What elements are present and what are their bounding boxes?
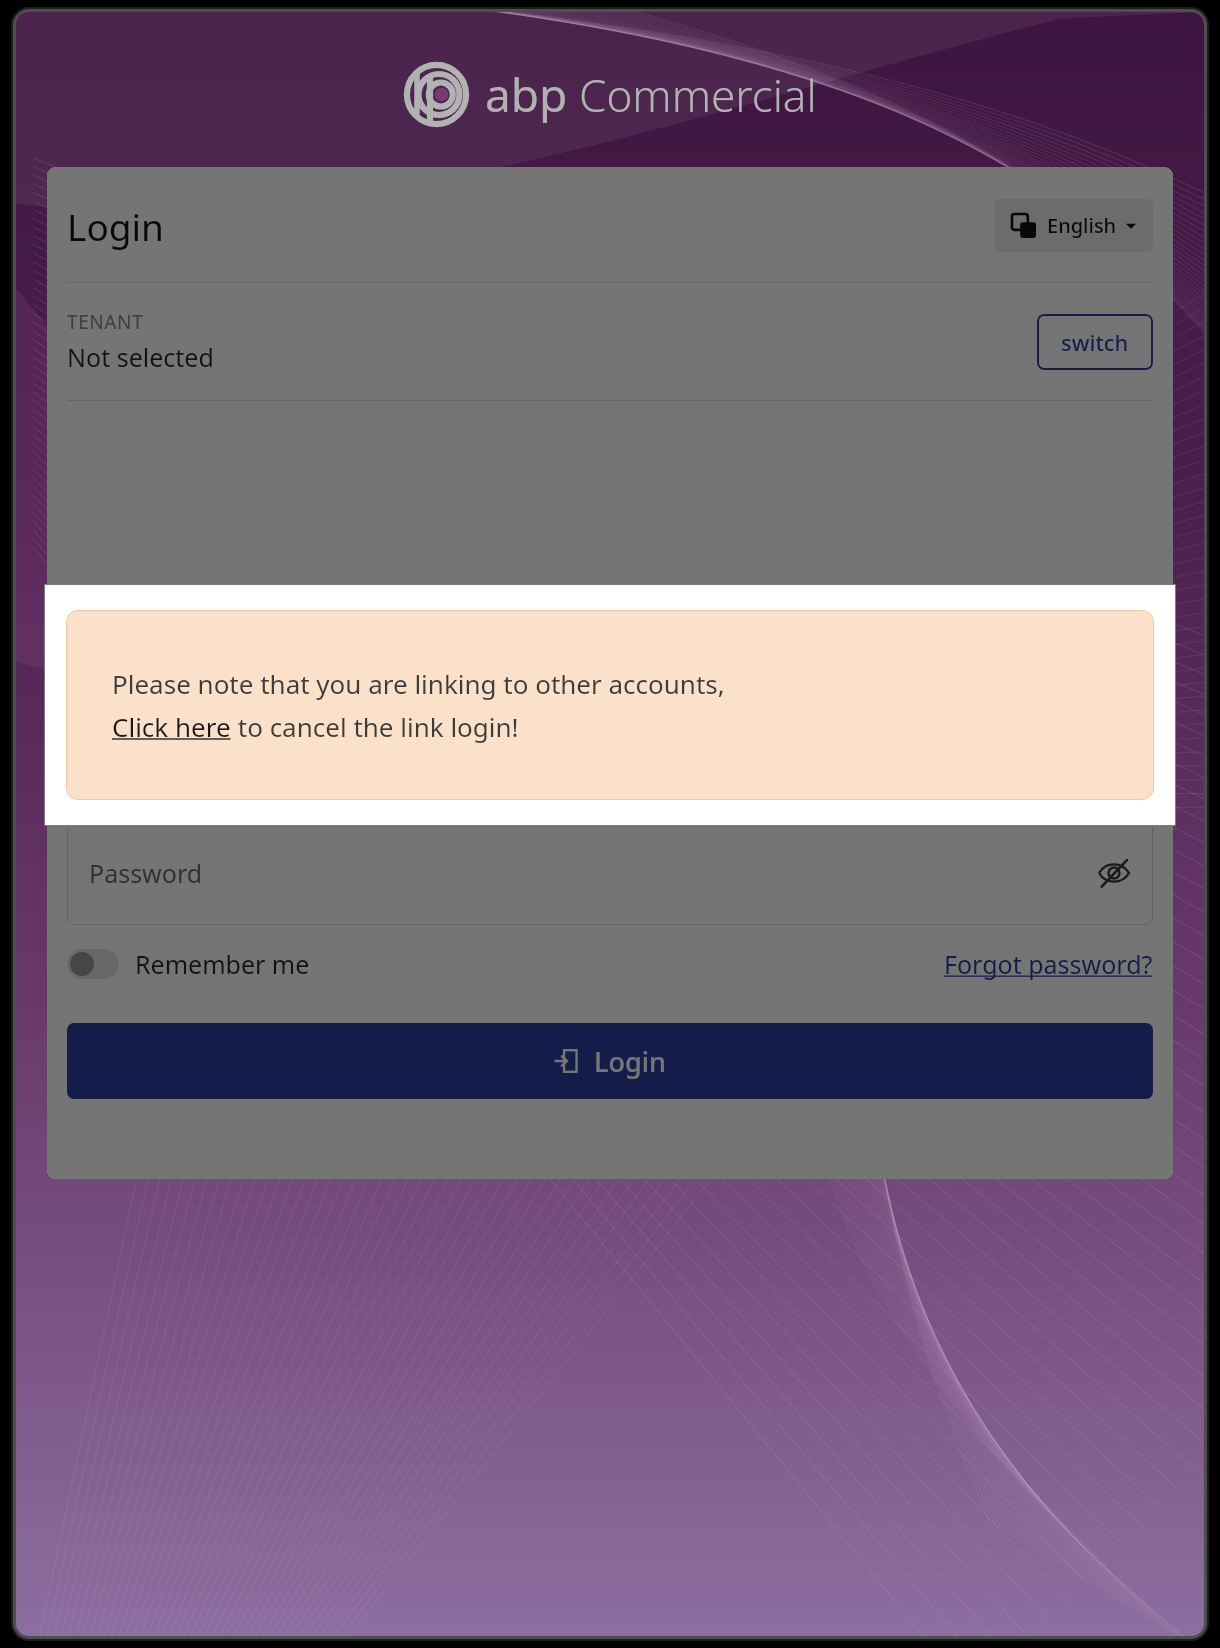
other: Show password (1097, 856, 1131, 890)
staticText: Login (67, 201, 164, 251)
button[interactable]: User name or email address (67, 697, 1153, 801)
staticText: Forgot password? (944, 947, 1153, 981)
staticText: Login (594, 1043, 666, 1080)
button[interactable]: Password (67, 821, 1153, 925)
staticText: Not selected (67, 340, 214, 374)
staticText: switch (1061, 327, 1129, 357)
button[interactable]: English (995, 199, 1153, 252)
staticText: to cancel the link login! (231, 709, 519, 744)
button[interactable]: Remember me (67, 947, 310, 981)
staticText: abp (485, 63, 568, 126)
button[interactable]: Forgot password? (944, 947, 1153, 981)
staticText: English (1047, 212, 1117, 239)
staticText: Click here (112, 709, 231, 744)
staticText: Please note that you are linking to othe… (112, 666, 725, 701)
staticText: Remember me (135, 947, 310, 981)
staticText: TENANT (67, 309, 144, 335)
staticText: Password (89, 856, 203, 890)
staticText: Commercial (579, 65, 817, 125)
button[interactable]: Login (67, 1023, 1153, 1099)
staticText: User name or email address (89, 732, 420, 766)
button[interactable]: switch (1037, 314, 1153, 370)
button[interactable]: Click here (112, 709, 231, 744)
